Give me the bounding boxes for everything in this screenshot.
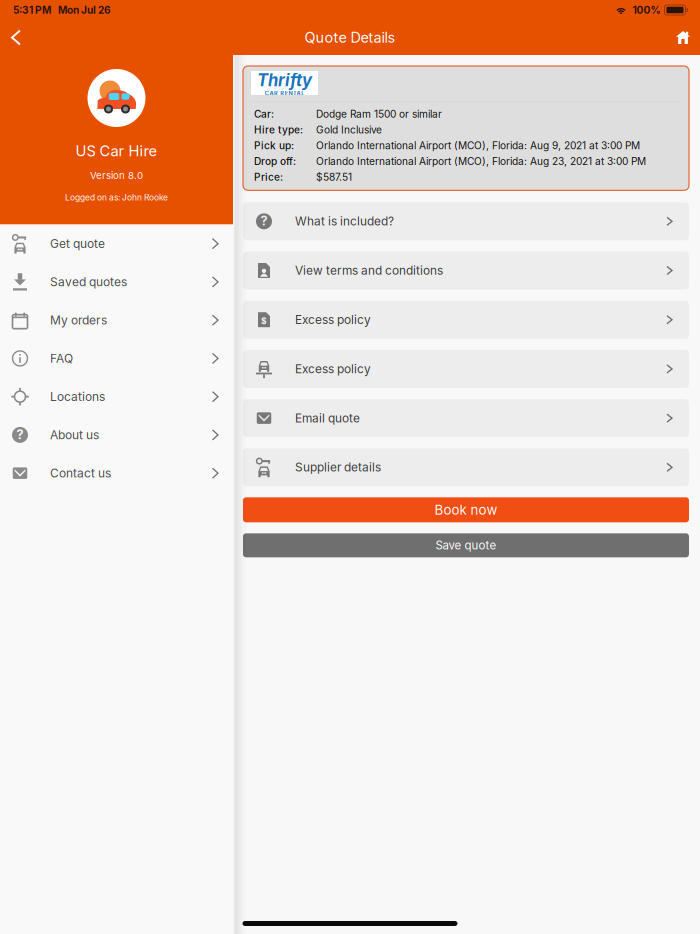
staticText: What is included? — [295, 214, 394, 228]
staticText: View terms and conditions — [295, 263, 443, 278]
button[interactable]: ? — [0, 416, 233, 454]
button[interactable]: Locations — [0, 377, 233, 416]
button[interactable]: S — [243, 301, 689, 339]
staticText: Saved quotes — [50, 275, 127, 289]
staticText: Pick up: — [254, 139, 294, 152]
staticText: S — [261, 316, 267, 326]
staticText: Gold Inclusive — [316, 124, 382, 136]
staticText: Excess policy — [295, 362, 371, 376]
button[interactable]: My orders — [0, 301, 233, 339]
button[interactable]: FAQ — [0, 339, 233, 377]
button[interactable]: Excess policy — [243, 350, 689, 388]
staticText: CAR RENTAL — [265, 90, 304, 97]
button[interactable]: Supplier details — [243, 448, 689, 486]
button[interactable]: Home — [668, 22, 698, 52]
button[interactable]: Book now — [243, 497, 689, 522]
staticText: Save quote — [435, 538, 496, 552]
staticText: Car: — [254, 108, 274, 120]
button[interactable]: Email quote — [243, 399, 689, 437]
staticText: Contact us — [50, 466, 111, 480]
staticText: ? — [16, 427, 23, 442]
staticText: 5:31 PM — [13, 4, 51, 16]
staticText: My orders — [50, 313, 107, 327]
staticText: Price: — [254, 171, 283, 183]
button[interactable]: Save quote — [243, 533, 689, 557]
staticText: Book now — [434, 502, 497, 518]
staticText: FAQ — [50, 351, 73, 366]
staticText: Get quote — [50, 236, 105, 251]
button[interactable]: View terms and conditions — [243, 251, 689, 289]
staticText: Excess policy — [295, 312, 371, 327]
button[interactable]: Saved quotes — [0, 263, 233, 301]
button[interactable]: Back — [1, 22, 31, 52]
staticText: Orlando International Airport (MCO), Flo… — [316, 155, 646, 168]
staticText: Orlando International Airport (MCO), Flo… — [316, 139, 640, 152]
staticText: Thrifty — [257, 70, 312, 90]
button[interactable]: Contact us — [0, 454, 233, 492]
staticText: Email quote — [295, 411, 360, 425]
staticText: Hire type: — [254, 124, 303, 136]
staticText: Locations — [50, 389, 105, 404]
staticText: US Car Hire — [75, 142, 157, 160]
staticText: Supplier details — [295, 460, 381, 474]
staticText: Quote Details — [304, 29, 395, 46]
staticText: 100% — [632, 4, 660, 16]
staticText: Mon Jul 26 — [58, 4, 111, 16]
button[interactable]: Get quote — [0, 224, 233, 263]
staticText: Dodge Ram 1500 or similar — [316, 108, 442, 120]
staticText: Logged on as: John Rooke — [65, 192, 168, 203]
button[interactable]: ? — [243, 202, 689, 240]
staticText: $587.51 — [316, 171, 352, 183]
staticText: Drop off: — [254, 155, 296, 168]
staticText: About us — [50, 428, 99, 442]
staticText: ? — [260, 213, 267, 229]
staticText: Version 8.0 — [90, 170, 143, 181]
